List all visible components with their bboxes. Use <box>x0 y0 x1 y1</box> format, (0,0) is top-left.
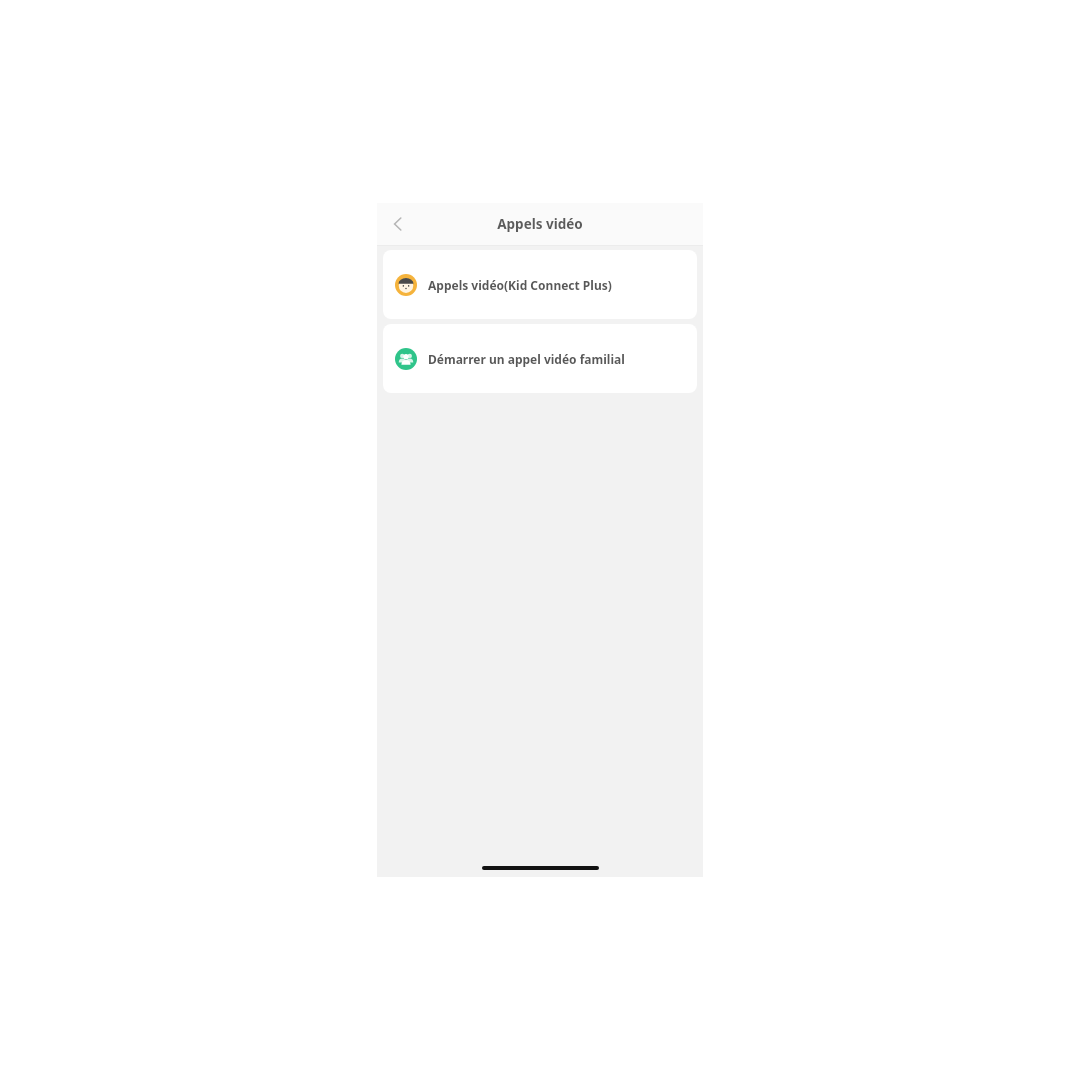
button[interactable]: Appels vidéo(Kid Connect Plus) <box>383 250 697 319</box>
staticText: Démarrer un appel vidéo familial <box>428 351 625 367</box>
button[interactable]: Back <box>377 203 419 245</box>
staticText: Appels vidéo <box>497 215 583 233</box>
button[interactable]: Démarrer un appel vidéo familial <box>383 324 697 393</box>
staticText: Appels vidéo(Kid Connect Plus) <box>428 277 612 293</box>
